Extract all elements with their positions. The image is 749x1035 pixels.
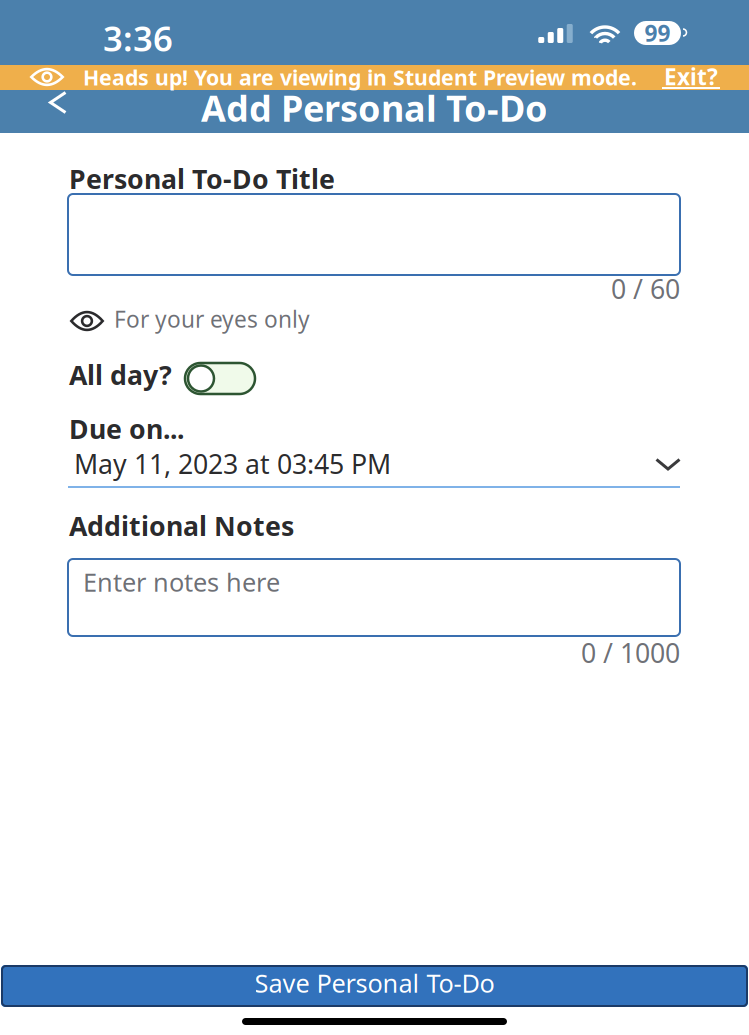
staticText: 0 / 60: [611, 271, 680, 306]
staticText: Heads up! You are viewing in Student Pre…: [83, 63, 637, 91]
staticText: Due on...: [69, 411, 184, 446]
button[interactable]: All day toggle: [185, 363, 255, 394]
staticText: Add Personal To-Do: [201, 84, 548, 132]
button[interactable]: May 11, 2023 at 03:45 PM: [68, 446, 680, 488]
button[interactable]: Exit?: [662, 66, 720, 91]
staticText: For your eyes only: [114, 304, 310, 334]
staticText: Exit?: [664, 61, 718, 91]
staticText: 99: [644, 18, 670, 48]
staticText: Save Personal To-Do: [254, 966, 494, 1000]
staticText: Additional Notes: [69, 508, 294, 543]
staticText: All day?: [69, 357, 172, 392]
button[interactable]: Save Personal To-Do: [0, 964, 749, 1007]
staticText: Enter notes here: [83, 565, 280, 599]
staticText: 0 / 1000: [581, 635, 680, 670]
button[interactable]: Back: [37, 80, 79, 125]
staticText: May 11, 2023 at 03:45 PM: [74, 446, 391, 481]
staticText: Personal To-Do Title: [69, 161, 335, 196]
staticText: 3:36: [103, 15, 173, 61]
